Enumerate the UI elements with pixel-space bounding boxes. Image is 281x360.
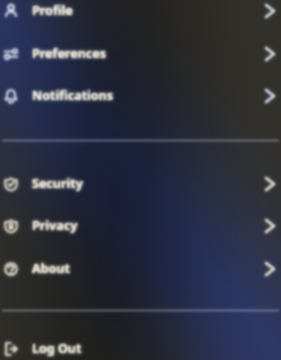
staticText: Preferences	[32, 45, 106, 62]
staticText: Privacy	[32, 217, 78, 234]
button[interactable]: Profile	[0, 0, 281, 32]
button[interactable]: About	[0, 247, 281, 290]
button[interactable]: Notifications	[0, 74, 281, 117]
staticText: Profile	[32, 2, 73, 19]
staticText: Notifications	[32, 87, 114, 104]
button[interactable]: Preferences	[0, 32, 281, 75]
staticText: About	[32, 260, 70, 277]
staticText: Log Out	[32, 340, 82, 357]
staticText: Privacy	[32, 217, 78, 234]
button[interactable]: Privacy	[0, 204, 281, 247]
staticText: Profile	[32, 2, 73, 19]
staticText: Preferences	[32, 45, 106, 62]
staticText: Privacy	[32, 217, 78, 234]
staticText: Profile	[32, 2, 73, 19]
staticText: About	[32, 260, 70, 277]
button[interactable]: Log Out	[0, 327, 281, 360]
staticText: Notifications	[32, 87, 114, 104]
staticText: Log Out	[32, 340, 82, 357]
button[interactable]: Security	[0, 162, 281, 205]
staticText: Security	[32, 175, 83, 192]
staticText: About	[32, 260, 70, 277]
staticText: Security	[32, 175, 83, 192]
staticText: Preferences	[32, 45, 106, 62]
staticText: Notifications	[32, 87, 114, 104]
staticText: Security	[32, 175, 83, 192]
staticText: Log Out	[32, 340, 82, 357]
